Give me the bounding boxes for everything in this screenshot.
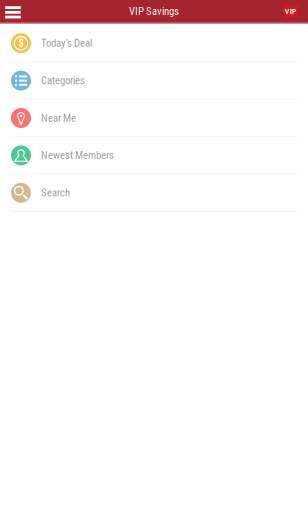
staticText: Near Me [41,112,76,124]
staticText: $ [18,37,23,49]
staticText: Today's Deal [41,37,92,49]
staticText: Categories [41,74,85,87]
staticText: VIP Savings [129,5,179,17]
button[interactable]: VIP [284,5,298,17]
staticText: VIP [285,7,297,16]
button[interactable]: Newest Members [0,137,308,175]
staticText: Search [41,186,70,199]
staticText: Newest Members [41,149,114,162]
button[interactable]: Menu [0,0,25,23]
button[interactable]: Search [0,175,308,212]
button[interactable]: Near Me [0,100,308,137]
button[interactable]: $ [0,25,308,62]
button[interactable]: Categories [0,62,308,100]
